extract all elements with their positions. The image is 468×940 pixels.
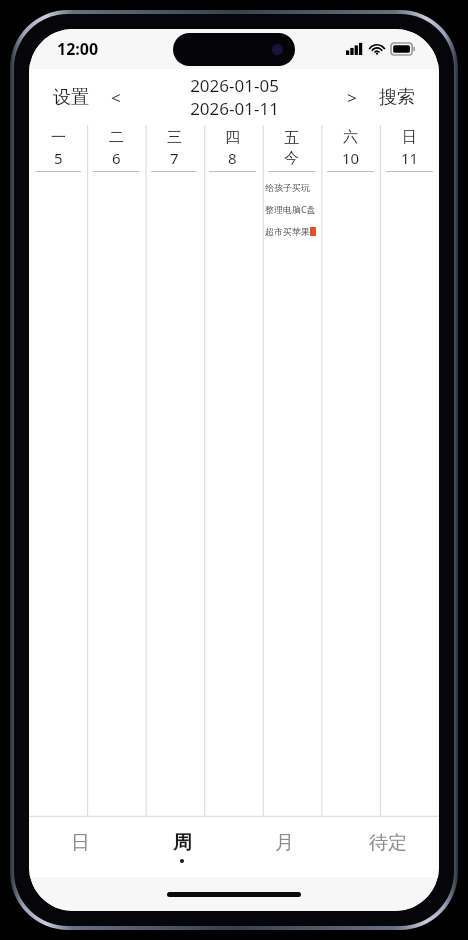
button[interactable]: 超市买苹果 [262, 220, 321, 242]
staticText: 六 [343, 128, 358, 147]
staticText: 7 [170, 148, 179, 168]
button[interactable]: Previous week [99, 76, 133, 119]
staticText: 月 [275, 831, 294, 855]
staticText: 超市买苹果 [265, 226, 310, 237]
staticText: 设置 [53, 86, 89, 109]
staticText: 给孩子买玩具 [265, 182, 318, 193]
button[interactable]: 日 [380, 125, 439, 817]
staticText: 5 [54, 148, 63, 168]
button[interactable]: 设置 [43, 78, 99, 117]
staticText: 整理电脑C盘 [265, 203, 316, 215]
staticText: 搜索 [379, 86, 415, 109]
staticText: > [347, 86, 357, 109]
staticText: 四 [225, 128, 240, 147]
button[interactable]: 整理电脑C盘 [262, 198, 321, 220]
button[interactable]: Next week [335, 76, 369, 119]
staticText: 今 [284, 149, 299, 168]
staticText: 一 [51, 128, 66, 147]
button[interactable]: 日 [29, 817, 131, 877]
staticText: 日 [71, 831, 90, 855]
button[interactable]: 2026-01-05 [133, 74, 335, 120]
button[interactable]: 五 [262, 125, 321, 817]
button[interactable]: 一 [29, 125, 87, 817]
button[interactable]: 给孩子买玩具 [262, 176, 321, 198]
staticText: 10 [342, 148, 360, 168]
staticText: 日 [402, 128, 417, 147]
button[interactable]: 二 [87, 125, 145, 817]
button[interactable]: 周 [131, 817, 233, 877]
button[interactable]: 三 [145, 125, 203, 817]
button[interactable]: 四 [203, 125, 262, 817]
staticText: 待定 [369, 831, 407, 855]
staticText: 周 [173, 831, 192, 855]
staticText: 11 [401, 148, 419, 168]
button[interactable]: 六 [321, 125, 380, 817]
staticText: 三 [167, 128, 182, 147]
staticText: 8 [228, 148, 237, 168]
staticText: 2026-01-11 [190, 97, 279, 120]
button[interactable]: 搜索 [369, 78, 425, 117]
button[interactable]: 待定 [336, 817, 439, 877]
staticText: 12:00 [57, 38, 99, 60]
staticText: 五 [284, 129, 299, 148]
button[interactable]: 月 [233, 817, 336, 877]
staticText: < [111, 86, 121, 109]
staticText: 6 [112, 148, 121, 168]
staticText: 2026-01-05 [190, 74, 279, 97]
staticText: 二 [109, 128, 124, 147]
